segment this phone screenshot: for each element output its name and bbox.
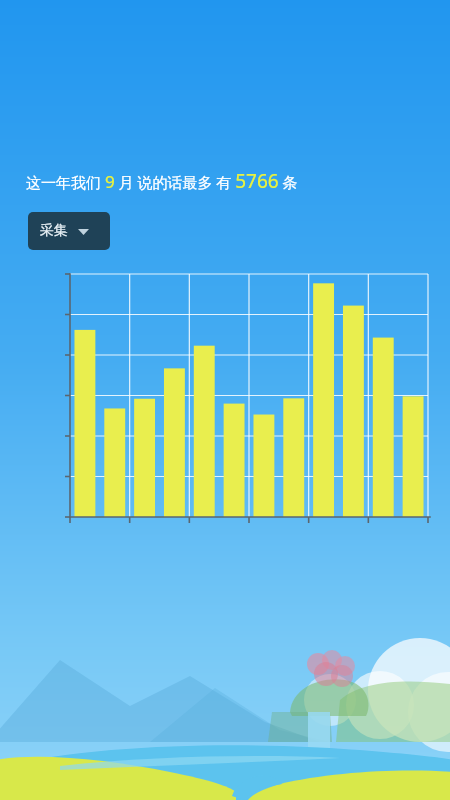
- staticText: 这一年我们 9 月 说的话最多 有 5766 条: [26, 168, 298, 194]
- staticText: 采集: [40, 222, 68, 240]
- button[interactable]: 采集: [28, 212, 110, 250]
